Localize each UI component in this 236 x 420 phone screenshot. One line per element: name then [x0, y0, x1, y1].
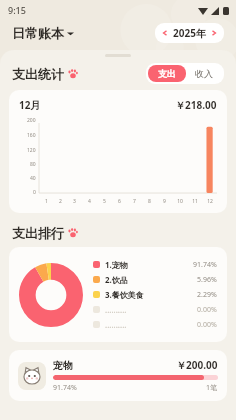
staticText: 2.29% [197, 290, 217, 300]
staticText: 2 [59, 198, 62, 205]
staticText: 支出统计 [12, 66, 64, 82]
staticText: 2.饮品 [105, 274, 128, 285]
staticText: 40 [30, 175, 36, 182]
staticText: 8 [148, 198, 151, 205]
button[interactable]: 收入 [186, 65, 222, 82]
staticText: 80 [30, 161, 36, 168]
staticText: 9 [163, 198, 166, 205]
staticText: ￥200.00 [176, 358, 218, 372]
staticText: 10 [177, 198, 183, 205]
staticText: 9:15 [8, 4, 26, 16]
staticText: 1 [45, 198, 48, 205]
staticText: 1笔 [206, 383, 218, 393]
staticText: 91.74% [53, 383, 77, 393]
staticText: 120 [27, 147, 36, 154]
staticText: 160 [27, 132, 36, 139]
other: 宠物 [22, 366, 42, 386]
staticText: 3 [73, 198, 76, 205]
staticText: 3.餐饮美食 [105, 289, 144, 300]
button[interactable]: 1.宠物 [9, 247, 227, 342]
button[interactable]: 宠物 [9, 350, 227, 401]
staticText: .......... [105, 304, 127, 315]
staticText: 200 [27, 117, 36, 124]
staticText: 2025年 [173, 26, 206, 40]
staticText: 支出排行 [12, 225, 64, 241]
staticText: 6 [118, 198, 121, 205]
button[interactable]: 支出 [148, 65, 186, 82]
staticText: 0 [33, 189, 36, 196]
staticText: 0.00% [197, 320, 217, 330]
staticText: 5.96% [197, 275, 217, 285]
staticText: 收入 [195, 68, 213, 79]
staticText: ￥218.00 [175, 98, 217, 112]
staticText: 5 [103, 198, 106, 205]
staticText: 宠物 [53, 359, 73, 372]
staticText: 91.74% [193, 260, 217, 270]
button[interactable]: 12月 [9, 90, 227, 213]
staticText: 11 [192, 198, 198, 205]
staticText: 12月 [19, 98, 41, 112]
staticText: 日常账本 [12, 25, 64, 41]
staticText: .......... [105, 319, 127, 330]
staticText: 0.00% [197, 305, 217, 315]
staticText: 支出 [158, 68, 176, 79]
staticText: 12 [207, 198, 213, 205]
staticText: 7 [133, 198, 136, 205]
staticText: 1.宠物 [105, 259, 128, 270]
button[interactable]: 日常账本 [12, 25, 74, 41]
button[interactable]: 2025年 [155, 23, 224, 43]
staticText: 4 [88, 198, 91, 205]
